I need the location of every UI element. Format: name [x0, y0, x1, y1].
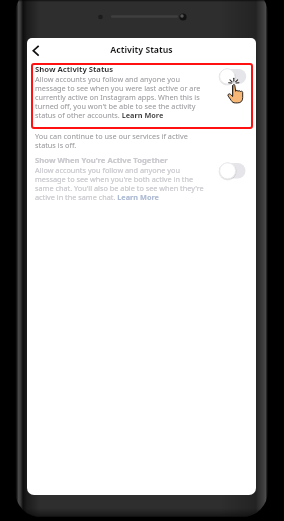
- button[interactable]: Show When You're Active Together: [35, 155, 208, 202]
- button[interactable]: Back: [27, 39, 47, 59]
- staticText: Allow accounts you follow and anyone you…: [35, 75, 203, 120]
- button[interactable]: [31, 63, 253, 129]
- staticText: Show When You're Active Together: [35, 155, 168, 165]
- staticText: Activity Status: [27, 44, 256, 56]
- staticText: Allow accounts you follow and anyone you…: [35, 166, 208, 202]
- button[interactable]: Toggle off: [218, 67, 248, 86]
- staticText: You can continue to use our services if …: [35, 132, 210, 150]
- button[interactable]: Toggle off: [218, 161, 248, 181]
- staticText: Show Activity Status: [35, 64, 114, 74]
- other: Tap here: [222, 76, 252, 106]
